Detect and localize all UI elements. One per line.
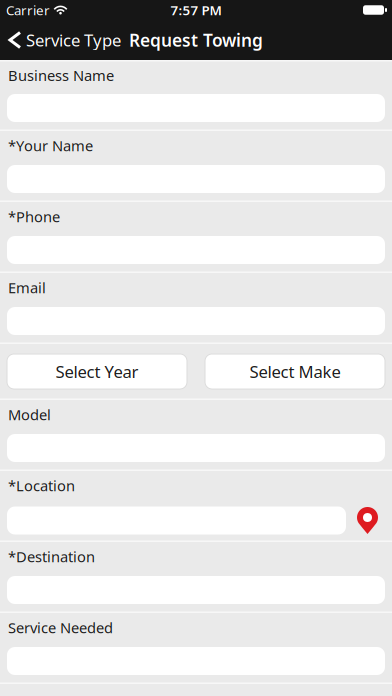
staticText: Model	[8, 404, 51, 424]
staticText: 7:57 PM	[170, 1, 221, 19]
staticText: Business Name	[8, 65, 114, 85]
staticText: Service Type	[26, 29, 121, 51]
staticText: *Destination	[8, 546, 95, 566]
staticText: *Your Name	[8, 135, 93, 155]
button[interactable]: Use current location	[357, 507, 378, 534]
button[interactable]: Service Type	[10, 29, 121, 51]
staticText: Email	[8, 277, 46, 297]
staticText: Request Towing	[129, 28, 263, 52]
button[interactable]: Select Make	[205, 354, 385, 389]
button[interactable]: Select Year	[7, 354, 187, 389]
staticText: Select Year	[55, 360, 138, 383]
staticText: Select Make	[249, 360, 340, 383]
staticText: *Phone	[8, 206, 60, 226]
staticText: Carrier	[6, 1, 50, 19]
staticText: *Location	[8, 475, 75, 495]
staticText: Service Needed	[8, 617, 113, 637]
